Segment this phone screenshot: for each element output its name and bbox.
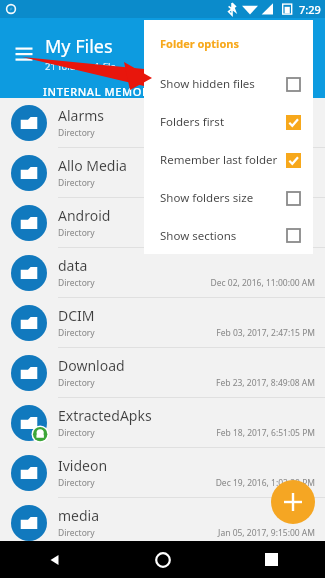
button[interactable]: Folders first [144, 103, 313, 141]
button[interactable]: data [0, 248, 325, 298]
staticText: Dec 02, 2016, 11:00:00 AM [210, 277, 315, 289]
staticText: Alarms [58, 106, 104, 125]
staticText: 7:29 [299, 2, 321, 17]
staticText: Show sections [160, 228, 282, 244]
staticText: Feb 18, 2017, 6:51:05 PM [216, 427, 315, 439]
button[interactable]: Show sections [144, 217, 313, 254]
staticText: Directory [58, 377, 95, 389]
staticText: Directory [58, 127, 95, 139]
button[interactable]: Recent apps [217, 541, 325, 578]
staticText: Directory [58, 527, 95, 539]
button[interactable]: media [0, 498, 325, 548]
button[interactable]: Ivideon [0, 448, 325, 498]
staticText: Show hidden files [160, 76, 282, 92]
staticText: Dec 19, 2016, 1:02:20 PM [215, 477, 315, 489]
staticText: Folder options [160, 36, 239, 51]
staticText: DCIM [58, 306, 95, 325]
button[interactable]: INTERNAL MEMORY [33, 84, 167, 106]
staticText: 21 folders, 1 file [45, 60, 116, 73]
button[interactable]: Remember last folder [144, 141, 313, 179]
button[interactable]: Android [0, 198, 325, 248]
staticText: Ivideon [58, 456, 108, 475]
staticText: INTERNAL MEMORY [43, 84, 157, 99]
staticText: Directory [58, 277, 95, 289]
staticText: Folders first [160, 114, 282, 130]
staticText: data [58, 256, 88, 275]
button[interactable]: Open navigation menu [10, 40, 38, 68]
button[interactable]: DCIM [0, 298, 325, 348]
staticText: ExtractedApks [58, 406, 152, 425]
button[interactable]: Download [0, 348, 325, 398]
button[interactable]: Show hidden files [144, 65, 313, 103]
staticText: Directory [58, 177, 95, 189]
staticText: Jan 05, 2017, 9:15:00 AM [218, 527, 315, 539]
button[interactable]: Alarms [0, 98, 325, 148]
button[interactable]: Show folders size [144, 179, 313, 217]
button[interactable]: Allo Media [0, 148, 325, 198]
staticText: Feb 03, 2017, 2:47:15 PM [216, 327, 315, 339]
staticText: Directory [58, 227, 95, 239]
staticText: Allo Media [58, 156, 127, 175]
button[interactable]: Add new [271, 480, 315, 524]
staticText: Feb 23, 2017, 8:49:08 AM [215, 377, 315, 389]
staticText: Directory [58, 327, 95, 339]
staticText: Show folders size [160, 190, 282, 206]
staticText: media [58, 506, 100, 525]
staticText: Download [58, 356, 125, 375]
staticText: Directory [58, 477, 95, 489]
staticText: Directory [58, 427, 95, 439]
staticText: My Files [45, 34, 113, 59]
button[interactable]: Back [0, 541, 109, 578]
button[interactable]: ExtractedApks [0, 398, 325, 448]
staticText: Android [58, 206, 111, 225]
button[interactable]: Home [109, 541, 217, 578]
staticText: Remember last folder [160, 152, 282, 168]
